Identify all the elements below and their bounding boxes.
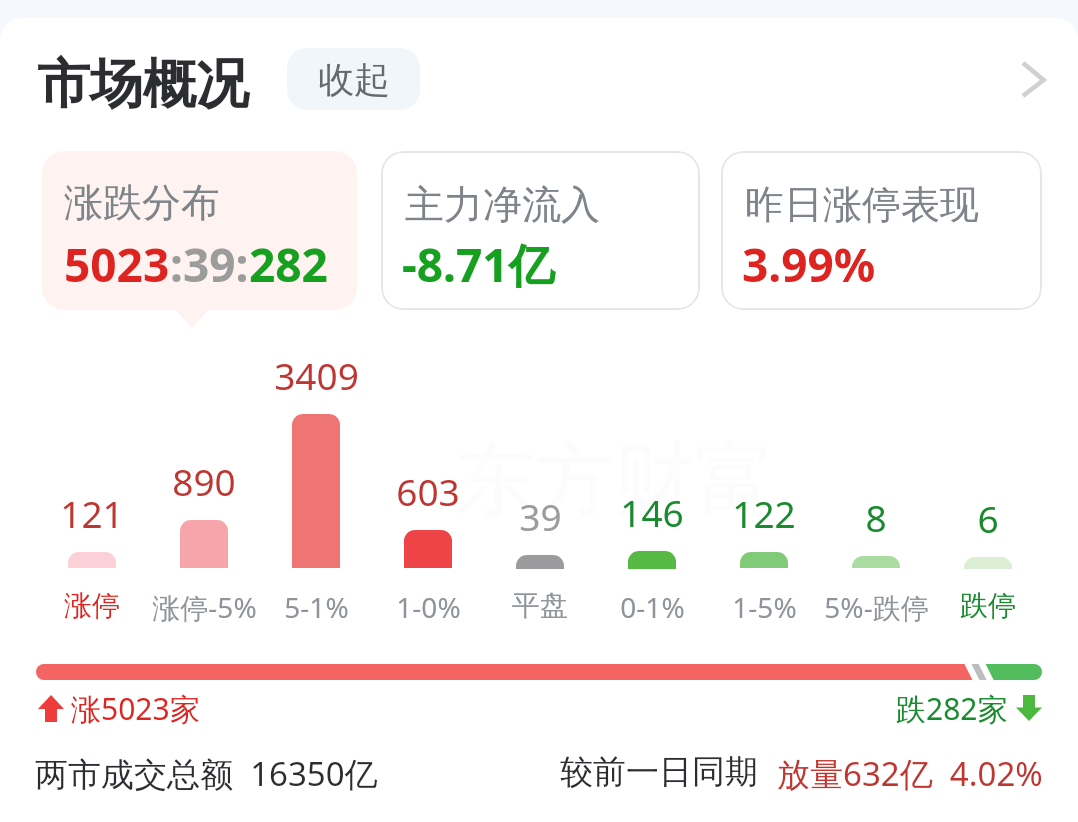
staticText: 市场概况	[37, 51, 249, 118]
button[interactable]	[148, 350, 260, 622]
button[interactable]	[484, 350, 596, 622]
staticText: 121	[60, 488, 124, 538]
button[interactable]	[820, 350, 932, 622]
staticText: 两市成交总额 16350亿	[35, 751, 378, 796]
button[interactable]	[36, 350, 148, 622]
staticText: 1-5%	[732, 588, 797, 626]
staticText: 跌停	[960, 588, 1016, 623]
staticText: 平盘	[512, 588, 568, 623]
staticText: 较前一日同期	[560, 751, 758, 793]
staticText: 603	[396, 466, 460, 516]
staticText: 5023	[64, 233, 170, 296]
button[interactable]: 涨跌分布	[42, 151, 357, 310]
button[interactable]: 主力净流入	[381, 151, 700, 310]
staticText: 3.99%	[742, 233, 876, 296]
staticText: 1-0%	[396, 588, 461, 626]
staticText: 涨停	[64, 588, 120, 623]
staticText: 跌282家	[896, 688, 1008, 729]
button[interactable]	[596, 350, 708, 622]
staticText: 涨跌分布	[64, 178, 220, 227]
staticText: 0-1%	[620, 588, 685, 626]
staticText: 主力净流入	[405, 180, 600, 229]
staticText: 东方财富	[455, 430, 775, 531]
staticText: 282	[249, 233, 328, 296]
staticText: 昨日涨停表现	[745, 180, 979, 229]
staticText: 5-1%	[284, 588, 349, 626]
staticText: 39	[519, 491, 562, 541]
staticText: 6	[977, 493, 999, 543]
staticText: 涨5023家	[71, 688, 200, 729]
staticText: 5%-跌停	[824, 588, 929, 626]
staticText: 890	[172, 456, 236, 506]
staticText: 涨停-5%	[152, 588, 257, 626]
button[interactable]	[260, 350, 372, 622]
staticText: 3409	[274, 350, 359, 400]
button[interactable]: 昨日涨停表现	[721, 151, 1042, 310]
button[interactable]	[372, 350, 484, 622]
staticText: 收起	[318, 57, 390, 102]
staticText: 8	[865, 492, 887, 542]
button[interactable]	[708, 350, 820, 622]
staticText: 146	[620, 487, 684, 537]
staticText: 122	[732, 488, 796, 538]
button[interactable]: 展开	[1000, 50, 1060, 110]
staticText: 放量632亿 4.02%	[777, 751, 1043, 796]
staticText: :39:	[170, 233, 249, 296]
button[interactable]: 收起	[287, 48, 420, 110]
staticText: -8.71亿	[402, 233, 555, 296]
button[interactable]	[932, 350, 1044, 622]
